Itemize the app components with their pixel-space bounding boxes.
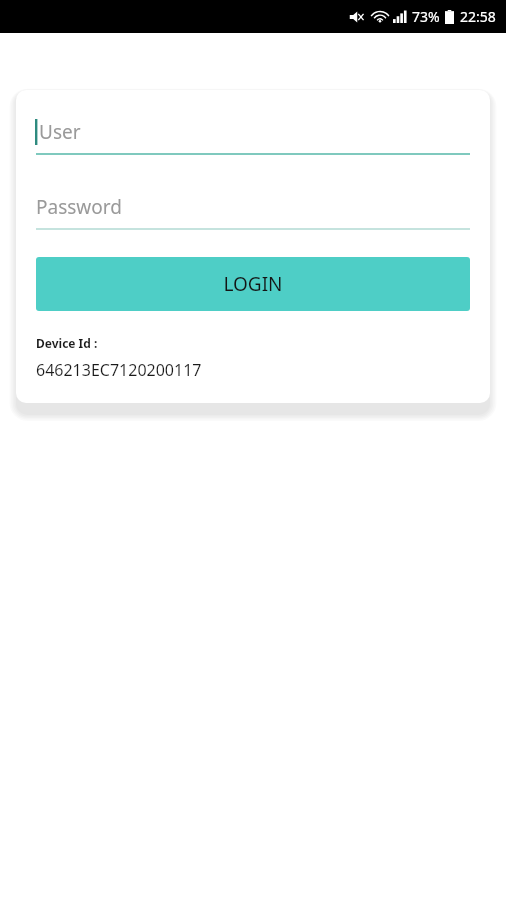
staticText: 646213EC7120200117 <box>36 359 202 381</box>
staticText: 22:58 <box>460 7 496 26</box>
staticText: User <box>39 119 81 145</box>
staticText: Password <box>36 194 122 220</box>
button[interactable]: Password <box>36 191 470 230</box>
staticText: 73% <box>412 7 440 26</box>
staticText: LOGIN <box>223 271 283 297</box>
button[interactable]: User <box>36 116 470 155</box>
button[interactable]: LOGIN <box>36 257 470 311</box>
staticText: Device Id : <box>36 335 98 351</box>
